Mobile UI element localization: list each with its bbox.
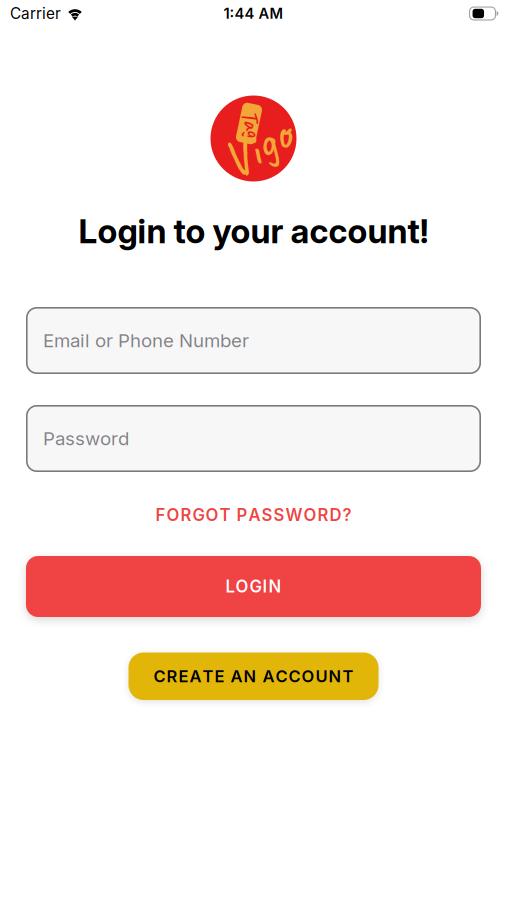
- staticText: C R E A T E A N A C C O U N T: [153, 666, 353, 686]
- staticText: Password: [43, 427, 129, 450]
- button[interactable]: C R E A T E A N A C C O U N T: [128, 652, 378, 700]
- button[interactable]: Email or Phone Number: [26, 307, 481, 374]
- button[interactable]: L O G I N: [26, 556, 481, 617]
- button[interactable]: Password: [26, 405, 481, 472]
- staticText: Vigo: [221, 116, 292, 179]
- staticText: F O R G O T P A S S W O R D ?: [155, 505, 351, 525]
- staticText: L O G I N: [225, 576, 281, 597]
- staticText: Email or Phone Number: [43, 329, 249, 352]
- staticText: Login to your account!: [78, 211, 428, 251]
- button[interactable]: F O R G O T P A S S W O R D ?: [149, 503, 357, 527]
- staticText: Carrier: [10, 4, 61, 23]
- staticText: 1:44 AM: [223, 5, 283, 22]
- staticText: Tag: [238, 109, 264, 138]
